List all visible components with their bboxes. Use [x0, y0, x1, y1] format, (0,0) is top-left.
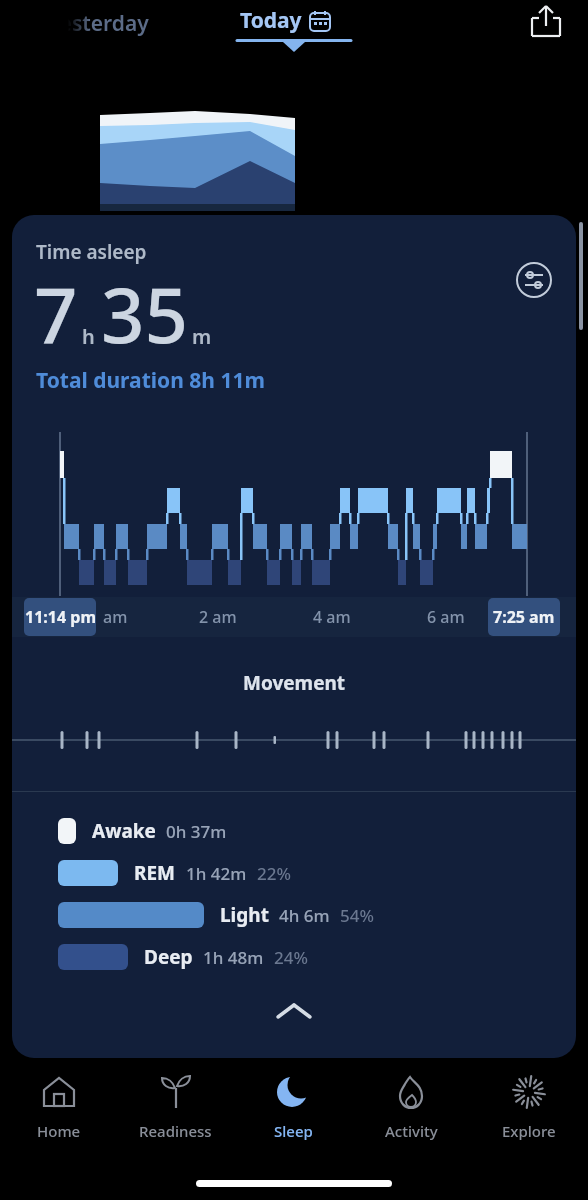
staticText: 2 am: [199, 606, 237, 628]
staticText: Explore: [502, 1121, 556, 1141]
staticText: am: [103, 606, 128, 628]
button[interactable]: Activity: [352, 1070, 470, 1160]
staticText: Activity: [385, 1121, 438, 1141]
button[interactable]: [514, 260, 554, 300]
staticText: 1h 42m: [186, 862, 247, 885]
staticText: 4h 6m: [279, 904, 330, 927]
staticText: 4 am: [313, 606, 351, 628]
staticText: 7: [34, 262, 78, 366]
staticText: Readiness: [139, 1121, 212, 1141]
staticText: 22%: [257, 862, 291, 885]
staticText: 54%: [340, 904, 374, 927]
staticText: 11:14 pm: [25, 606, 96, 628]
staticText: REM: [134, 860, 176, 886]
button[interactable]: Yesterday: [48, 9, 149, 38]
staticText: m: [192, 323, 212, 350]
button[interactable]: [524, 2, 568, 44]
staticText: Home: [37, 1121, 81, 1141]
button[interactable]: Today: [240, 6, 330, 35]
staticText: Sleep: [274, 1121, 313, 1141]
staticText: 1h 48m: [203, 946, 264, 969]
button[interactable]: Explore: [470, 1070, 588, 1160]
staticText: 35: [101, 262, 188, 366]
staticText: Awake: [92, 818, 156, 844]
button[interactable]: [266, 993, 322, 1029]
staticText: Total duration 8h 11m: [36, 366, 265, 395]
staticText: h: [82, 323, 95, 350]
staticText: 6 am: [427, 606, 465, 628]
staticText: 0h 37m: [166, 820, 227, 843]
staticText: 24%: [274, 946, 308, 969]
staticText: Movement: [243, 670, 346, 696]
staticText: Time asleep: [36, 239, 147, 265]
button[interactable]: Sleep: [234, 1070, 352, 1160]
button[interactable]: Readiness: [117, 1070, 234, 1160]
staticText: Today: [240, 6, 302, 35]
staticText: 7:25 am: [493, 606, 555, 628]
staticText: Light: [220, 902, 269, 928]
staticText: Deep: [144, 944, 193, 970]
button[interactable]: Home: [0, 1070, 117, 1160]
